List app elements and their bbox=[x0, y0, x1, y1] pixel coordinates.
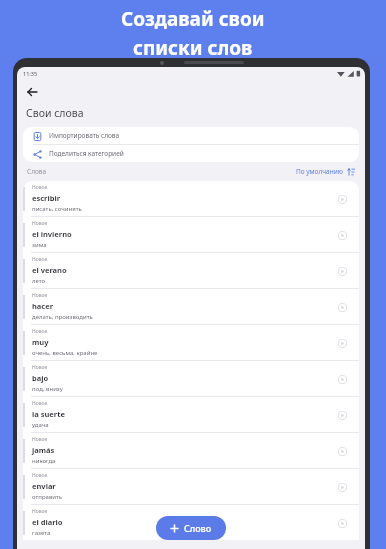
staticText: el diario bbox=[32, 517, 63, 527]
button[interactable]: Play pronunciation bbox=[335, 228, 349, 242]
staticText: Новое bbox=[32, 472, 48, 479]
button[interactable]: Play pronunciation bbox=[335, 444, 349, 458]
staticText: Новое bbox=[32, 364, 48, 371]
staticText: Новое bbox=[32, 508, 48, 515]
staticText: escribir bbox=[32, 193, 61, 203]
staticText: делать, производить bbox=[32, 313, 93, 321]
staticText: Новое bbox=[32, 400, 48, 407]
button[interactable]: Новое bbox=[23, 397, 359, 432]
staticText: Новое bbox=[32, 184, 48, 191]
staticText: 11:35 bbox=[23, 70, 38, 77]
button[interactable]: Новое bbox=[23, 361, 359, 396]
button[interactable]: Слово bbox=[156, 516, 226, 540]
button[interactable]: Новое bbox=[23, 253, 359, 288]
staticText: под, внизу bbox=[32, 385, 63, 393]
staticText: enviar bbox=[32, 481, 56, 491]
button[interactable]: Новое bbox=[23, 217, 359, 252]
staticText: лето bbox=[32, 277, 46, 285]
staticText: зима bbox=[32, 241, 47, 249]
button[interactable]: Play pronunciation bbox=[335, 264, 349, 278]
button[interactable]: Новое bbox=[23, 289, 359, 324]
staticText: Слова bbox=[27, 167, 47, 176]
staticText: удача bbox=[32, 421, 49, 429]
staticText: Слово bbox=[184, 522, 212, 534]
button[interactable]: Новое bbox=[23, 325, 359, 360]
button[interactable]: Play pronunciation bbox=[335, 372, 349, 386]
staticText: Новое bbox=[32, 436, 48, 443]
button[interactable]: Play pronunciation bbox=[335, 480, 349, 494]
staticText: muy bbox=[32, 337, 49, 347]
staticText: никогда bbox=[32, 457, 56, 465]
staticText: el invierno bbox=[32, 229, 72, 239]
staticText: газета bbox=[32, 529, 51, 537]
staticText: По умолчанию bbox=[296, 167, 343, 176]
staticText: jamás bbox=[32, 445, 55, 455]
button[interactable]: Новое bbox=[23, 505, 359, 540]
button[interactable]: Play pronunciation bbox=[335, 408, 349, 422]
button[interactable]: Play pronunciation bbox=[335, 516, 349, 530]
staticText: bajo bbox=[32, 373, 49, 383]
button[interactable]: Поделиться категорией bbox=[23, 145, 359, 162]
button[interactable]: Новое bbox=[23, 181, 359, 216]
staticText: el verano bbox=[32, 265, 67, 275]
staticText: Создавай свои bbox=[121, 6, 265, 32]
staticText: Новое bbox=[32, 292, 48, 299]
staticText: очень, весьма, крайне bbox=[32, 349, 98, 357]
button[interactable]: Импортировать слова bbox=[23, 127, 359, 144]
staticText: Новое bbox=[32, 256, 48, 263]
staticText: писать, сочинять bbox=[32, 205, 82, 213]
staticText: Импортировать слова bbox=[49, 131, 120, 140]
staticText: списки слов bbox=[133, 35, 253, 61]
staticText: отправить bbox=[32, 493, 63, 501]
staticText: Новое bbox=[32, 328, 48, 335]
button[interactable]: Новое bbox=[23, 469, 359, 504]
button[interactable]: Play pronunciation bbox=[335, 300, 349, 314]
staticText: Свои слова bbox=[26, 106, 84, 120]
button[interactable]: Новое bbox=[23, 433, 359, 468]
button[interactable]: По умолчанию bbox=[296, 167, 355, 176]
button[interactable]: Play pronunciation bbox=[335, 336, 349, 350]
staticText: hacer bbox=[32, 301, 54, 311]
button[interactable]: Play pronunciation bbox=[335, 192, 349, 206]
staticText: Поделиться категорией bbox=[49, 149, 124, 158]
button[interactable]: Back bbox=[23, 83, 41, 101]
staticText: Новое bbox=[32, 220, 48, 227]
staticText: la suerte bbox=[32, 409, 65, 419]
